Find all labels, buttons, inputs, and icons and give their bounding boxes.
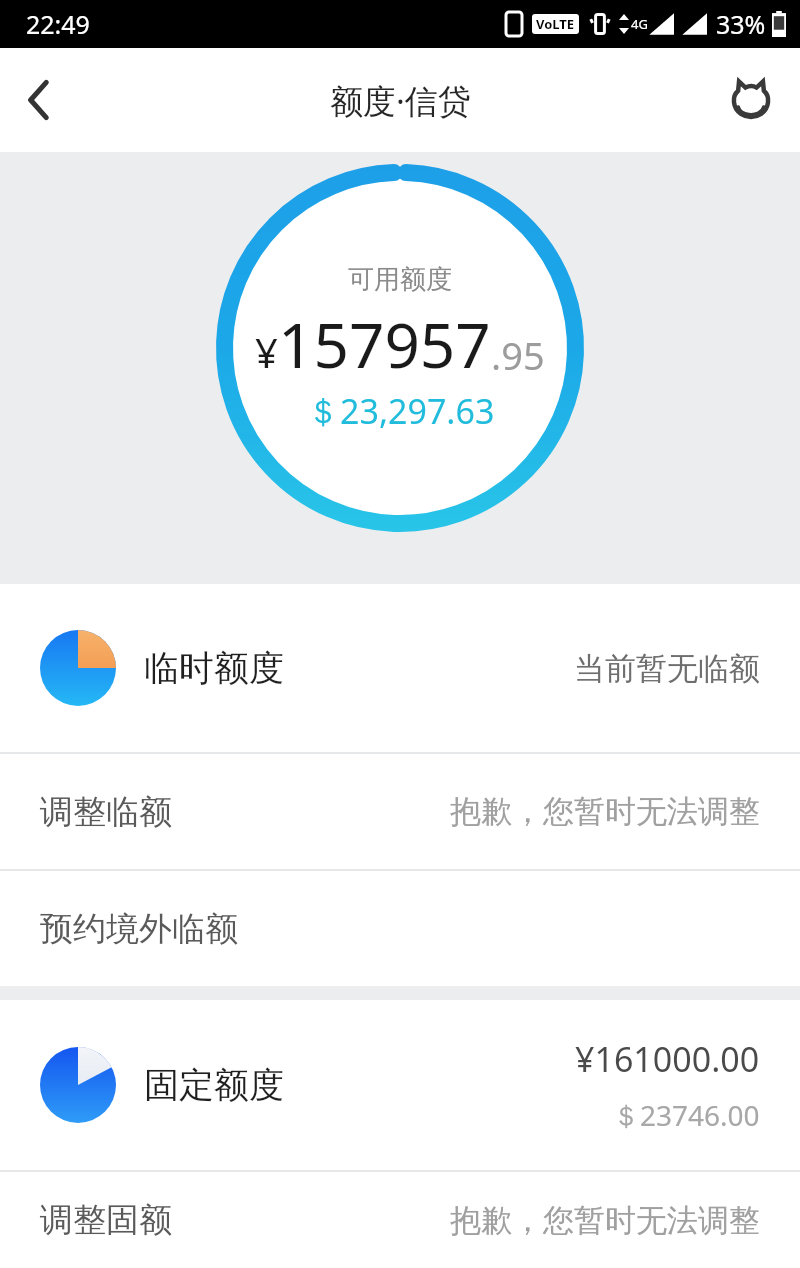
staticText: 调整临额: [40, 791, 172, 833]
staticText: 抱歉，您暂时无法调整: [450, 1201, 760, 1240]
button[interactable]: 临时额度: [0, 584, 800, 752]
staticText: .95: [491, 329, 545, 381]
button[interactable]: 固定额度: [0, 1000, 800, 1170]
staticText: ＄23746.00: [612, 1096, 760, 1134]
staticText: 可用额度: [348, 263, 452, 296]
staticText: 4G: [631, 15, 648, 33]
staticText: 预约境外临额: [40, 908, 238, 950]
button[interactable]: 调整固额: [0, 1172, 800, 1268]
staticText: 33%: [716, 7, 766, 41]
staticText: 抱歉，您暂时无法调整: [450, 792, 760, 831]
staticText: 22:49: [26, 7, 90, 41]
staticText: 当前暂无临额: [574, 649, 760, 688]
staticText: 调整固额: [40, 1199, 172, 1241]
button[interactable]: 调整临额: [0, 754, 800, 869]
button[interactable]: Back: [0, 61, 78, 139]
staticText: VoLTE: [536, 15, 575, 33]
staticText: 临时额度: [144, 646, 284, 690]
staticText: 额度·信贷: [330, 78, 471, 123]
button[interactable]: Customer service: [720, 69, 782, 131]
button[interactable]: 预约境外临额: [0, 871, 800, 986]
staticText: ¥: [255, 325, 278, 379]
staticText: 157957: [278, 302, 491, 386]
staticText: ＄23,297.63: [306, 388, 495, 434]
staticText: 固定额度: [144, 1063, 284, 1107]
staticText: ¥161000.00: [575, 1036, 760, 1082]
